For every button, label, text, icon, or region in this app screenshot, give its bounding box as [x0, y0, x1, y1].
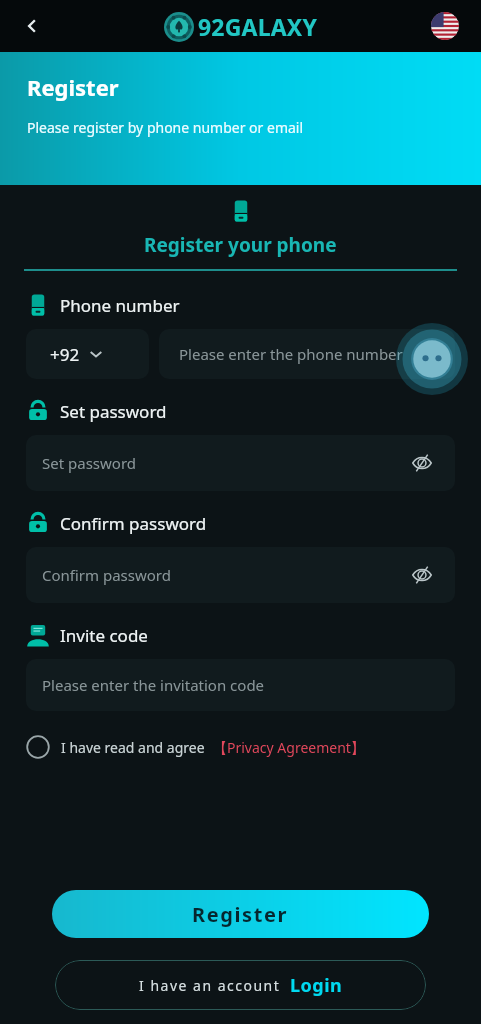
button[interactable]: Customer support chat	[396, 323, 468, 395]
button[interactable]: Please enter the phone number	[159, 329, 455, 379]
button[interactable]: I have an account	[55, 960, 426, 1010]
staticText: Please register by phone number or email	[27, 118, 304, 137]
button[interactable]: Confirm password	[26, 547, 455, 603]
staticText: I have an account	[139, 976, 281, 995]
staticText: 【Privacy Agreement】	[213, 738, 365, 757]
button[interactable]: Register	[52, 890, 429, 938]
staticText: Confirm password	[42, 565, 171, 585]
button[interactable]: Back	[14, 8, 50, 44]
staticText: I have read and agree	[61, 738, 205, 757]
button[interactable]: Language	[431, 12, 459, 40]
staticText: Phone number	[60, 294, 180, 317]
staticText: Set password	[42, 453, 137, 473]
staticText: Please enter the invitation code	[42, 675, 265, 695]
button[interactable]: Show password	[409, 450, 435, 476]
staticText: Set password	[60, 400, 167, 423]
staticText: Register your phone	[144, 232, 337, 258]
button[interactable]	[229, 199, 253, 223]
button[interactable]: Set password	[26, 435, 455, 491]
staticText: 92GALAXY	[198, 11, 318, 42]
staticText: Register	[27, 72, 119, 102]
button[interactable]: I have read and agree	[26, 735, 455, 759]
button[interactable]: Please enter the invitation code	[26, 659, 455, 711]
staticText: Invite code	[60, 624, 148, 647]
staticText: Register	[192, 901, 289, 928]
button[interactable]: +92	[26, 329, 149, 379]
staticText: Login	[290, 973, 343, 998]
staticText: +92	[50, 343, 80, 366]
staticText: Confirm password	[60, 512, 207, 535]
button[interactable]: Show password	[409, 562, 435, 588]
staticText: Please enter the phone number	[179, 344, 403, 364]
